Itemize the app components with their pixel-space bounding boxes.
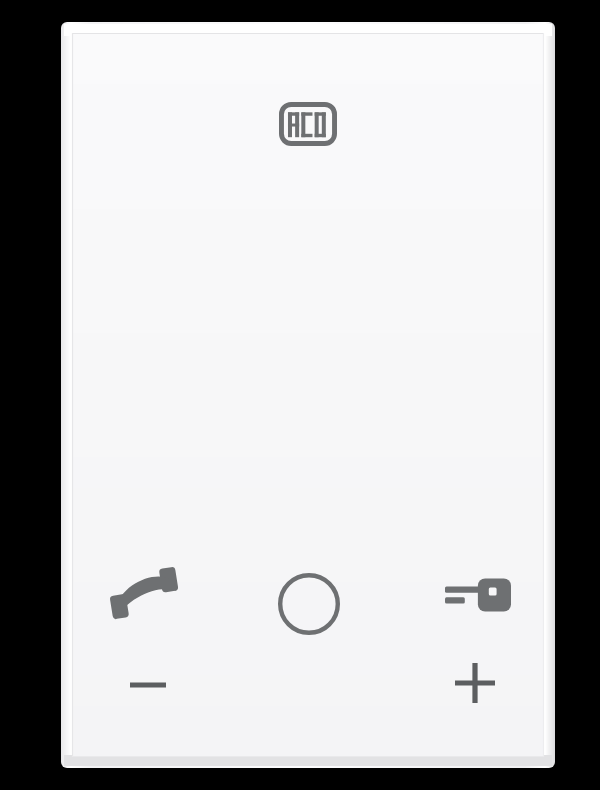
button[interactable]: Volume down bbox=[114, 658, 182, 712]
button[interactable]: Answer call bbox=[100, 558, 188, 628]
button[interactable]: Open door bbox=[432, 562, 524, 628]
button[interactable]: Menu bbox=[272, 567, 346, 641]
button[interactable]: Volume up bbox=[440, 650, 510, 716]
